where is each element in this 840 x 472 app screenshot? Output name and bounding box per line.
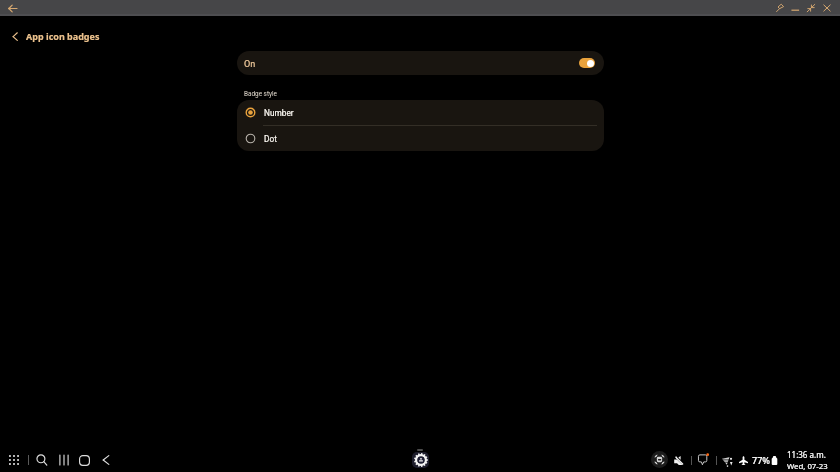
- button[interactable]: Dot: [237, 126, 604, 151]
- button[interactable]: Screen capture: [651, 451, 668, 468]
- staticText: Badge style: [244, 90, 277, 98]
- button[interactable]: Apps: [9, 455, 19, 465]
- button[interactable]: Mute: [674, 455, 684, 465]
- button[interactable]: Wi-Fi: [722, 456, 733, 467]
- staticText: App icon badges: [26, 30, 100, 42]
- button[interactable]: On: [237, 51, 604, 75]
- button[interactable]: Minimize: [791, 3, 800, 12]
- button[interactable]: Battery: [771, 456, 778, 465]
- button[interactable]: Back: [8, 4, 18, 14]
- staticText: On: [244, 58, 256, 69]
- button[interactable]: Home: [79, 455, 90, 466]
- button[interactable]: Messages: [698, 454, 709, 465]
- staticText: Number: [264, 108, 294, 118]
- button[interactable]: Settings: [412, 452, 429, 468]
- button[interactable]: Back: [101, 455, 111, 465]
- button[interactable]: Close: [823, 4, 831, 12]
- button[interactable]: Airplane mode: [739, 456, 748, 465]
- staticText: Wed, 07-23: [787, 461, 828, 472]
- button[interactable]: Search: [36, 454, 48, 466]
- staticText: 77%: [752, 454, 770, 466]
- staticText: Dot: [264, 134, 277, 144]
- staticText: 11:36 a.m.: [787, 449, 826, 460]
- button[interactable]: Number: [237, 100, 604, 125]
- button[interactable]: App icon badges on: [579, 58, 595, 68]
- button[interactable]: Restore: [806, 3, 816, 13]
- button[interactable]: Navigate up: [10, 32, 22, 44]
- button[interactable]: Recents: [59, 455, 69, 465]
- button[interactable]: Pin: [775, 3, 785, 13]
